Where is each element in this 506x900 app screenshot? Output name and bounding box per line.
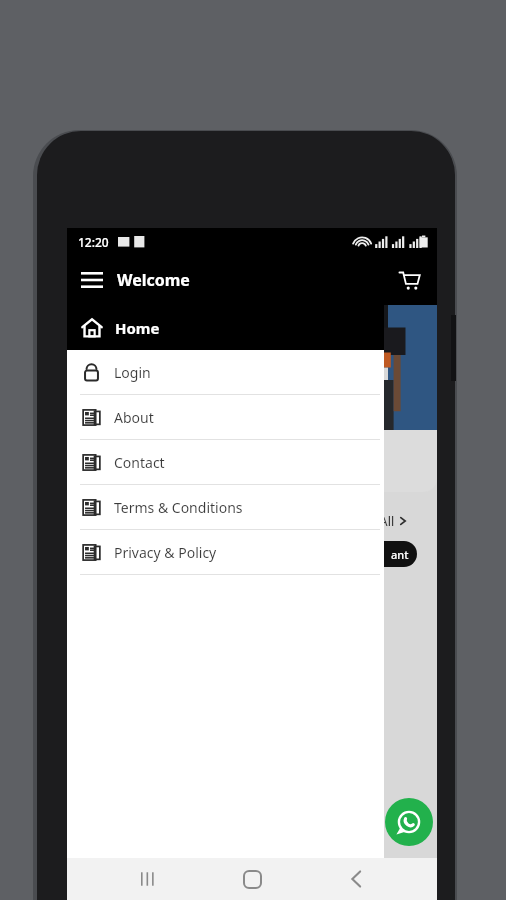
staticText: 12:20 [78, 234, 109, 250]
button[interactable]: Chat on WhatsApp [385, 798, 433, 846]
staticText: Welcome [117, 269, 190, 291]
button[interactable]: ant [363, 541, 417, 567]
button[interactable]: Recent apps [127, 858, 171, 900]
staticText: Contact [114, 453, 165, 472]
button[interactable]: Privacy & Policy [67, 530, 384, 574]
staticText: Privacy & Policy [114, 543, 217, 562]
button[interactable]: Open navigation menu [81, 272, 107, 288]
staticText: w All [367, 513, 395, 529]
button[interactable]: Shopping cart [391, 262, 427, 298]
staticText: About [114, 408, 154, 427]
staticText: ant [391, 547, 409, 562]
staticText: Terms & Conditions [114, 498, 243, 517]
button[interactable]: Home [67, 305, 384, 350]
button[interactable]: w All [367, 511, 408, 531]
staticText: Home [115, 318, 160, 338]
button[interactable]: Login [67, 350, 384, 394]
staticText: Login [114, 363, 151, 382]
button[interactable]: Home [230, 858, 274, 900]
button[interactable]: Terms & Conditions [67, 485, 384, 529]
button[interactable]: About [67, 395, 384, 439]
button[interactable]: Back [334, 858, 378, 900]
button[interactable]: Contact [67, 440, 384, 484]
